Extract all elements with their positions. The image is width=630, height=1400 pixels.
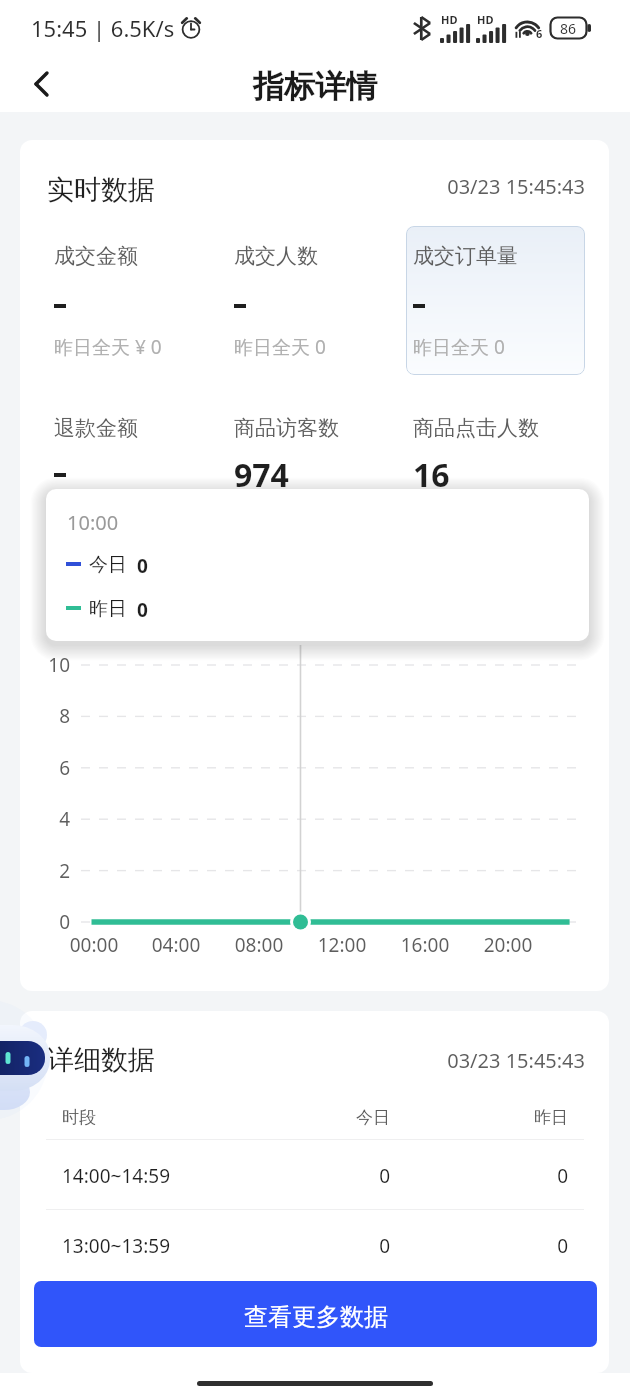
staticText: 16 (413, 453, 450, 497)
staticText: 00:00 (44, 932, 144, 958)
staticText: 今日 (190, 1107, 390, 1128)
staticText: HD (441, 12, 458, 27)
staticText: 退款金额 (54, 415, 138, 441)
button[interactable]: 成交人数 (227, 226, 406, 375)
staticText: 6 (536, 26, 543, 41)
staticText: 2 (20, 858, 70, 884)
staticText: 10 (20, 652, 70, 678)
staticText: 10:00 (67, 509, 119, 536)
staticText: 6 (20, 755, 70, 781)
staticText: 成交金额 (54, 243, 138, 269)
staticText: 昨日全天 0 (234, 334, 326, 360)
staticText: 974 (234, 453, 289, 497)
staticText: 0 (190, 1163, 390, 1189)
staticText: 4 (20, 806, 70, 832)
staticText: 昨日 (368, 1107, 568, 1128)
staticText: 指标详情 (253, 67, 377, 106)
staticText: 查看更多数据 (244, 1302, 388, 1332)
button[interactable]: 成交金额 (47, 226, 226, 375)
staticText: 8 (20, 703, 70, 729)
staticText: 商品点击人数 (413, 415, 539, 441)
staticText: 今日 (89, 553, 127, 575)
staticText: 昨日全天 ¥ 0 (54, 334, 162, 360)
staticText: 0 (137, 553, 148, 575)
staticText: 商品访客数 (234, 415, 339, 441)
button[interactable]: 查看更多数据 (34, 1281, 597, 1347)
staticText: 03/23 15:45:43 (306, 173, 585, 200)
staticText: 成交订单量 (413, 243, 518, 269)
staticText: 20:00 (458, 932, 558, 958)
staticText: 时段 (62, 1107, 96, 1128)
staticText: 昨日全天 0 (413, 334, 505, 360)
button[interactable]: 成交订单量 (406, 226, 585, 375)
staticText: 0 (137, 597, 148, 619)
staticText: 0 (368, 1233, 568, 1259)
button[interactable]: Back (10, 56, 72, 112)
staticText: 昨日 (89, 597, 127, 619)
staticText: 成交人数 (234, 243, 318, 269)
staticText: 08:00 (209, 932, 309, 958)
staticText: 16:00 (375, 932, 475, 958)
staticText: 12:00 (292, 932, 392, 958)
staticText: 实时数据 (47, 173, 155, 207)
staticText: 03/23 15:45:43 (306, 1047, 585, 1074)
staticText: 86 (560, 19, 577, 38)
staticText: 15:45 | 6.5K/s (31, 13, 175, 43)
staticText: 04:00 (126, 932, 226, 958)
staticText: 14:00~14:59 (62, 1163, 170, 1189)
staticText: 详细数据 (47, 1043, 155, 1077)
staticText: 0 (20, 909, 70, 935)
staticText: 0 (190, 1233, 390, 1259)
staticText: HD (477, 12, 494, 27)
staticText: 13:00~13:59 (62, 1233, 170, 1259)
staticText: 0 (368, 1163, 568, 1189)
